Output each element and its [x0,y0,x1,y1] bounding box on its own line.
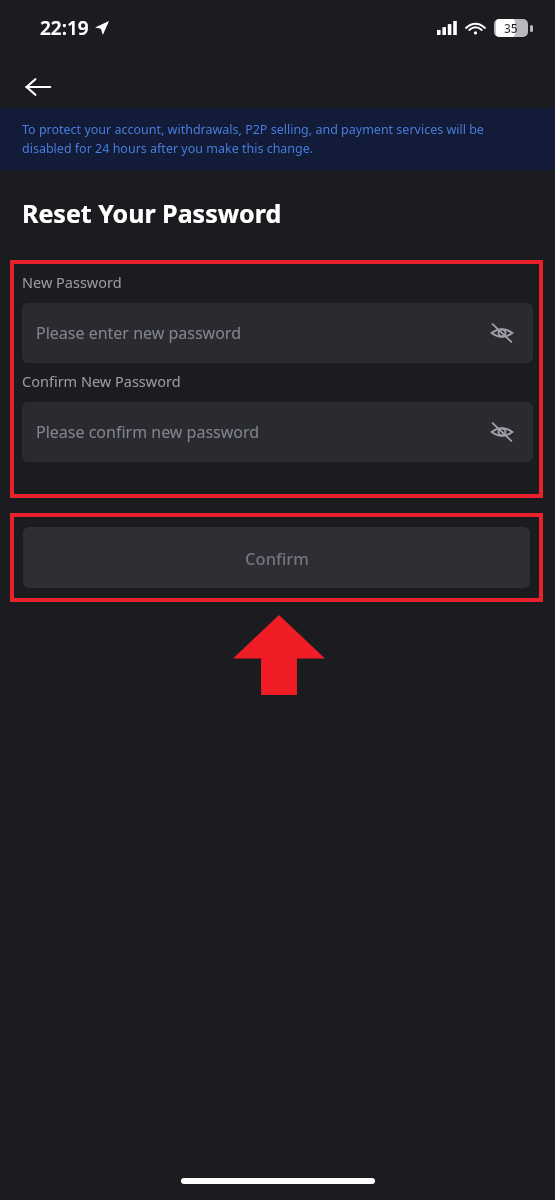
button[interactable]: Please confirm new password [22,402,533,462]
button[interactable]: Back [12,61,64,113]
staticText: 22:19 [40,15,89,41]
button[interactable]: Confirm [23,527,530,588]
staticText: New Password [22,272,122,292]
button[interactable]: Please enter new password [22,303,533,363]
button[interactable]: Show password [485,316,519,350]
staticText: Confirm New Password [22,371,181,391]
staticText: To protect your account, withdrawals, P2… [22,121,531,157]
staticText: Reset Your Password [22,196,282,230]
staticText: Please enter new password [36,322,485,344]
staticText: Please confirm new password [36,421,485,443]
staticText: 35 [504,20,518,36]
button[interactable]: Show password [485,415,519,449]
staticText: Confirm [245,547,309,569]
